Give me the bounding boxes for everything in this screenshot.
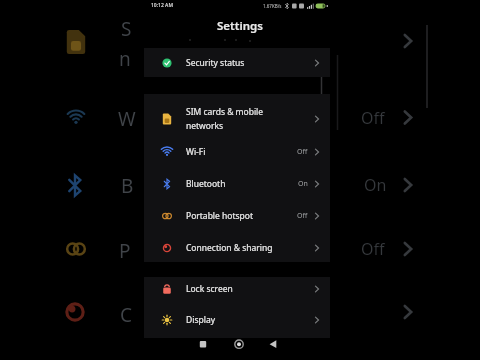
staticText: Settings	[217, 18, 263, 33]
button[interactable]	[262, 335, 284, 353]
staticText: n	[119, 46, 131, 70]
button[interactable]: Security status	[144, 48, 330, 77]
button[interactable]: SIM cards & mobile	[144, 102, 330, 136]
staticText: S	[121, 16, 132, 40]
button[interactable]	[228, 335, 250, 353]
staticText: networks	[186, 120, 224, 132]
staticText: 1.67KB/s	[263, 3, 282, 9]
staticText: P	[119, 238, 131, 262]
staticText: C	[120, 302, 133, 326]
staticText: Off	[361, 238, 385, 260]
staticText: 10:12 AM	[151, 2, 173, 9]
staticText: On	[364, 174, 387, 196]
staticText: W	[118, 106, 136, 130]
staticText: Lock screen	[186, 283, 233, 295]
button[interactable]	[192, 335, 214, 353]
button[interactable]: Lock screen	[144, 277, 330, 301]
staticText: Connection & sharing	[186, 242, 273, 254]
staticText: Bluetooth	[186, 178, 226, 190]
button[interactable]: Connection & sharing	[144, 234, 330, 262]
staticText: Off	[297, 147, 308, 157]
staticText: Display	[186, 314, 215, 326]
staticText: Off	[297, 211, 308, 221]
staticText: Wi-Fi	[186, 146, 206, 158]
staticText: Off	[361, 107, 385, 129]
staticText: On	[298, 179, 308, 189]
staticText: SIM cards & mobile	[186, 106, 264, 118]
button[interactable]: Wi-Fi	[144, 138, 330, 166]
button[interactable]: Bluetooth	[144, 170, 330, 198]
button[interactable]: Display	[144, 308, 330, 332]
button[interactable]: Portable hotspot	[144, 202, 330, 230]
staticText: Security status	[186, 57, 245, 69]
staticText: Portable hotspot	[186, 210, 254, 222]
staticText: B	[121, 173, 134, 197]
